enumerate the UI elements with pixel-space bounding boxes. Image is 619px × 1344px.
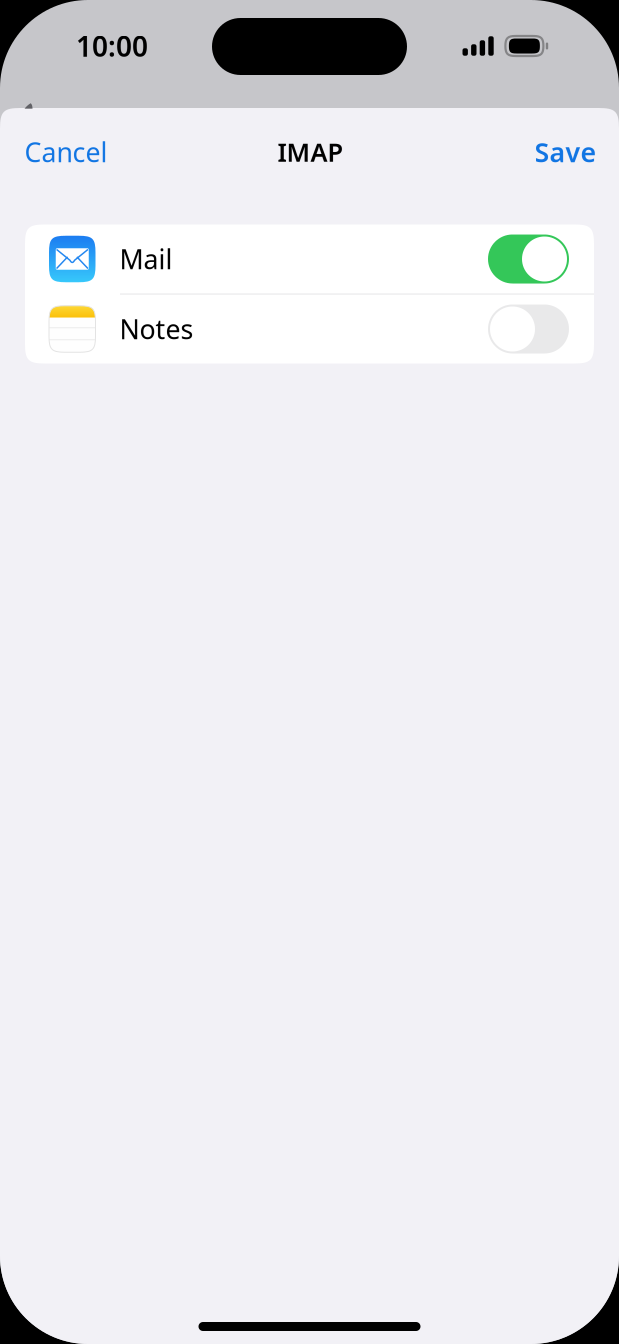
staticText: IMAP [277,135,343,169]
staticText: Notes [119,311,193,347]
button[interactable]: Cancel [24,108,124,196]
staticText: Save [534,134,596,170]
button[interactable]: Notes [25,294,594,363]
button[interactable]: Save [496,108,596,196]
staticText: Mail [119,241,172,277]
staticText: Cancel [24,134,107,170]
button[interactable]: Mail [25,224,594,293]
staticText: 10:00 [76,27,148,65]
